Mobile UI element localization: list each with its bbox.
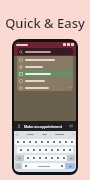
button[interactable]: Key — [69, 139, 75, 145]
button[interactable] — [17, 63, 73, 70]
button[interactable]: Space — [29, 163, 58, 169]
button[interactable]: Key — [49, 155, 55, 161]
button[interactable]: Key — [24, 155, 31, 161]
button[interactable]: Key — [43, 155, 49, 161]
other: More options — [72, 133, 75, 136]
button[interactable]: Key — [45, 139, 51, 145]
button[interactable]: Insert suggestion — [17, 84, 73, 91]
button[interactable]: Key — [51, 139, 57, 145]
button[interactable]: Key — [55, 147, 61, 153]
button[interactable]: Key — [43, 147, 49, 153]
other: Clipboard tools — [15, 133, 18, 136]
button[interactable]: Key — [17, 147, 24, 153]
button[interactable] — [42, 134, 47, 135]
button[interactable]: Key — [63, 139, 69, 145]
button[interactable]: Key — [21, 139, 27, 145]
button[interactable]: Shift — [15, 155, 24, 161]
button[interactable] — [17, 77, 73, 84]
button[interactable]: Key — [49, 147, 55, 153]
button[interactable]: Key — [37, 155, 43, 161]
button[interactable]: Enter — [65, 163, 75, 169]
button[interactable]: Key — [39, 139, 45, 145]
button[interactable]: Search — [17, 48, 73, 55]
button[interactable]: Backspace — [67, 155, 75, 161]
button[interactable] — [55, 134, 64, 135]
button[interactable]: Key — [24, 147, 31, 153]
button[interactable]: Key — [37, 147, 43, 153]
other: Insert suggestion — [68, 86, 71, 89]
button[interactable] — [27, 134, 34, 135]
button[interactable]: Key — [58, 163, 65, 169]
staticText: Make an appointment — [24, 124, 63, 129]
other: Search — [19, 50, 23, 54]
button[interactable]: Key — [27, 139, 33, 145]
button[interactable]: Symbols — [15, 163, 22, 169]
button[interactable]: Key — [57, 139, 63, 145]
button[interactable]: Key — [31, 147, 37, 153]
staticText: Quick & Easy — [0, 14, 90, 32]
button[interactable]: Key — [31, 155, 37, 161]
button[interactable]: Key — [22, 163, 29, 169]
button[interactable]: Key — [33, 139, 39, 145]
other: Send — [69, 124, 73, 128]
button[interactable]: Key — [67, 147, 73, 153]
button[interactable]: Key — [15, 139, 21, 145]
button[interactable]: Voice input — [14, 121, 76, 131]
other: Voice input — [17, 124, 21, 128]
button[interactable]: Key — [55, 155, 61, 161]
button[interactable] — [17, 70, 73, 77]
button[interactable]: Key — [61, 155, 67, 161]
button[interactable]: Key — [61, 147, 67, 153]
button[interactable] — [17, 56, 73, 63]
